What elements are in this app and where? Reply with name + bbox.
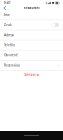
button[interactable]: Rezervácia xyxy=(0,60,63,70)
button[interactable]: Adresa xyxy=(0,30,63,40)
button[interactable]: Zvuk xyxy=(0,20,63,30)
staticText: Rezervácia xyxy=(4,63,20,67)
staticText: Zvuk xyxy=(4,23,12,27)
staticText: Telefón xyxy=(4,43,15,47)
staticText: › xyxy=(58,63,59,67)
button[interactable]: Ime xyxy=(0,10,63,20)
staticText: Restaurant xyxy=(23,6,39,10)
staticText: Ime xyxy=(4,13,10,17)
staticText: 9:41 xyxy=(4,1,11,5)
staticText: Adresa xyxy=(4,33,14,37)
button[interactable]: Odhlásiť sa xyxy=(0,70,63,79)
button[interactable]: Back xyxy=(1,5,8,11)
button[interactable]: Otvorené xyxy=(0,50,63,60)
staticText: Odhlásiť sa xyxy=(23,73,39,77)
staticText: Otvorené xyxy=(4,53,18,57)
button[interactable]: Telefón xyxy=(0,40,63,50)
